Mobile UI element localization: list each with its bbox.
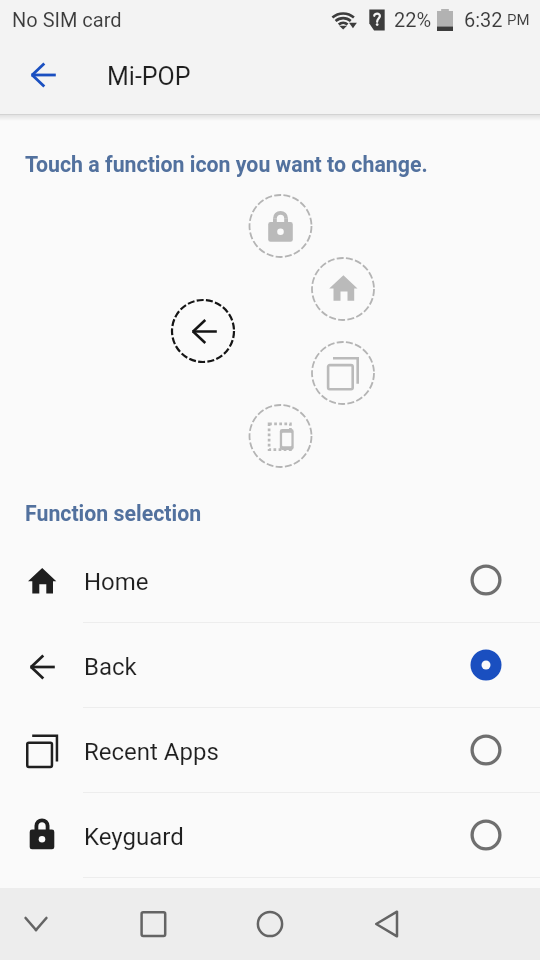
staticText: Touch a function icon you want to change… <box>25 152 428 177</box>
button[interactable]: Back <box>16 48 69 101</box>
staticText: 6:32 <box>464 8 503 31</box>
button[interactable]: Recent Apps <box>0 708 540 792</box>
staticText: No SIM card <box>12 8 122 31</box>
staticText: Recent Apps <box>84 738 219 766</box>
button[interactable]: Back <box>0 623 540 707</box>
button[interactable]: Home <box>240 888 300 960</box>
button[interactable]: Back <box>357 888 417 960</box>
staticText: Keyguard <box>84 823 184 851</box>
staticText: Mi-POP <box>107 62 191 91</box>
button[interactable]: Keyguard <box>0 793 540 877</box>
button[interactable]: Hide <box>6 888 66 960</box>
staticText: Home <box>84 568 149 596</box>
staticText: 22% <box>394 8 432 31</box>
button[interactable]: Recent apps <box>123 888 183 960</box>
staticText: PM <box>507 11 530 29</box>
button[interactable]: Home <box>0 538 540 622</box>
staticText: Back <box>84 653 137 681</box>
staticText: Function selection <box>25 501 202 526</box>
